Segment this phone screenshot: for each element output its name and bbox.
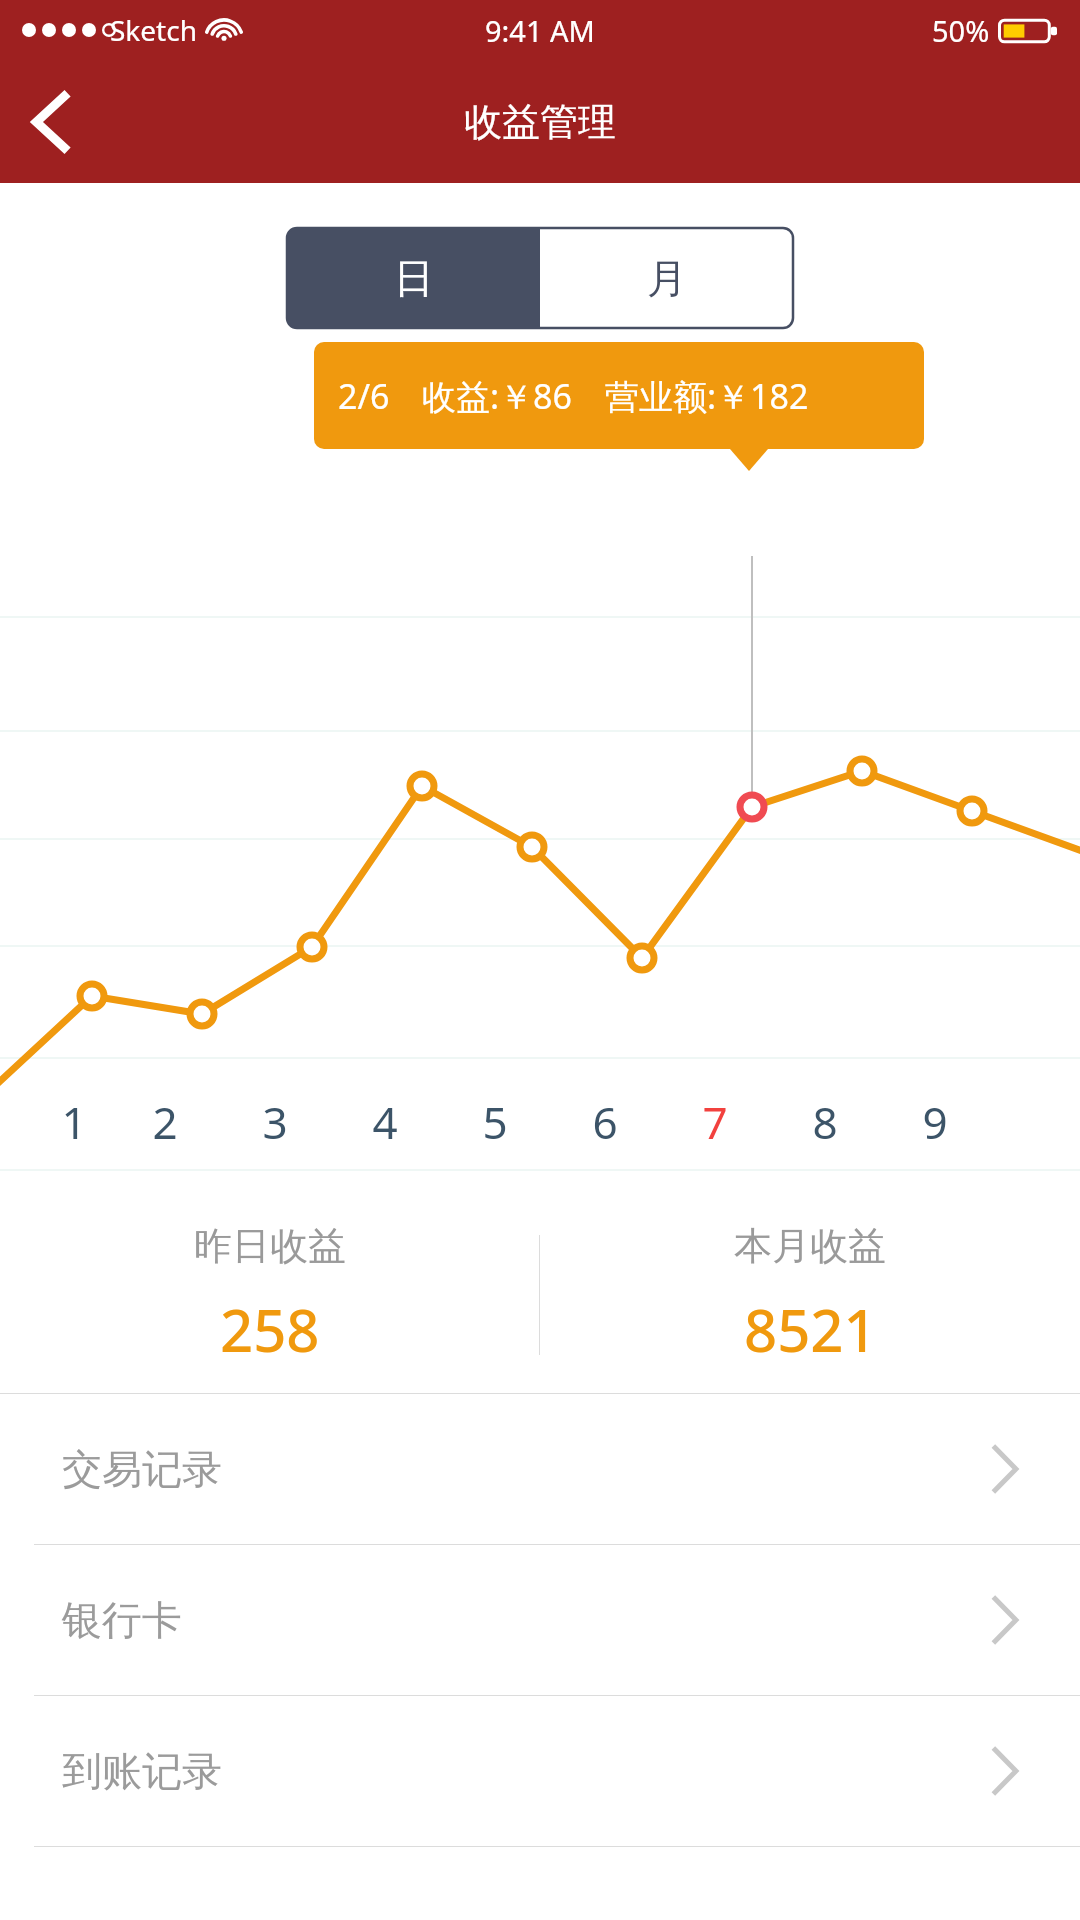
staticText: 日	[394, 253, 434, 303]
staticText: 50%	[932, 11, 990, 50]
staticText: 2/6	[338, 373, 390, 419]
staticText: 月	[647, 253, 687, 303]
button[interactable]: 2/6	[314, 342, 924, 449]
staticText: 9	[922, 1092, 948, 1152]
staticText: 6	[592, 1092, 618, 1152]
button[interactable]: 到账记录	[0, 1696, 1080, 1846]
staticText: 收益管理	[464, 98, 616, 146]
staticText: 4	[372, 1092, 398, 1152]
staticText: 3	[262, 1092, 288, 1152]
button[interactable]: 银行卡	[0, 1545, 1080, 1695]
button[interactable]: 日	[287, 228, 540, 328]
staticText: 8521	[744, 1290, 877, 1369]
staticText: 昨日收益	[194, 1222, 346, 1270]
staticText: Sketch	[110, 11, 197, 49]
staticText: 营业额:￥182	[605, 373, 809, 419]
button[interactable]: Back	[0, 72, 100, 172]
staticText: 收益:￥86	[422, 373, 573, 419]
staticText: 本月收益	[734, 1222, 886, 1270]
staticText: 7	[702, 1092, 728, 1152]
button[interactable]: 昨日收益	[0, 1222, 539, 1369]
staticText: 交易记录	[62, 1444, 222, 1494]
button[interactable]: 交易记录	[0, 1394, 1080, 1544]
staticText: 到账记录	[62, 1746, 222, 1796]
staticText: 8	[812, 1092, 838, 1152]
staticText: 2	[152, 1092, 178, 1152]
button[interactable]: 月	[540, 228, 793, 328]
staticText: 9:41 AM	[485, 11, 595, 50]
staticText: 银行卡	[62, 1595, 182, 1645]
staticText: 1	[61, 1092, 87, 1152]
staticText: 5	[482, 1092, 508, 1152]
button[interactable]: 本月收益	[540, 1222, 1080, 1369]
staticText: 258	[220, 1290, 320, 1369]
